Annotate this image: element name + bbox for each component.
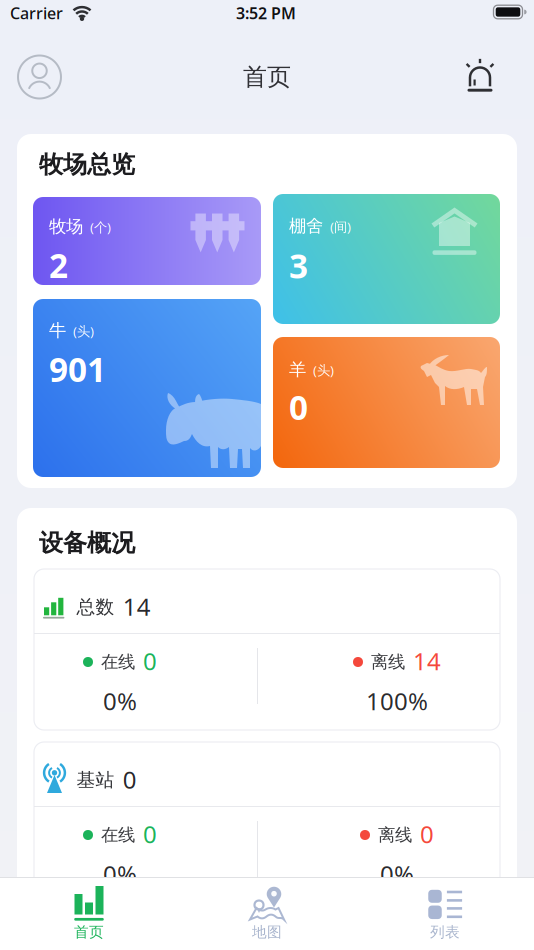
staticText: 14 bbox=[123, 591, 151, 622]
staticText: 3:52 PM bbox=[236, 2, 296, 24]
staticText: 在线 bbox=[101, 824, 135, 846]
button[interactable]: 列表 bbox=[356, 877, 534, 950]
staticText: 棚舍 bbox=[289, 215, 323, 237]
staticText: 牧场总览 bbox=[39, 150, 135, 179]
staticText: (个) bbox=[90, 218, 111, 236]
staticText: 设备概况 bbox=[39, 528, 135, 558]
staticText: 2 bbox=[49, 243, 68, 287]
staticText: 离线 bbox=[378, 824, 412, 846]
staticText: (间) bbox=[330, 218, 351, 235]
button[interactable]: Alerts bbox=[458, 55, 502, 99]
button[interactable]: 羊 bbox=[273, 337, 500, 468]
staticText: 0% bbox=[103, 858, 137, 890]
staticText: 14 bbox=[413, 645, 441, 677]
staticText: 3 bbox=[289, 243, 308, 288]
staticText: 0 bbox=[143, 818, 157, 850]
staticText: 总数 bbox=[76, 595, 114, 618]
staticText: 0 bbox=[420, 818, 434, 850]
staticText: 牛 bbox=[49, 320, 66, 341]
staticText: 基站 bbox=[76, 768, 114, 791]
staticText: 0 bbox=[143, 645, 157, 677]
staticText: 首页 bbox=[243, 62, 291, 92]
staticText: (头) bbox=[73, 322, 94, 340]
staticText: 100% bbox=[366, 685, 428, 717]
staticText: (头) bbox=[313, 361, 334, 379]
staticText: 在线 bbox=[101, 651, 135, 673]
staticText: 羊 bbox=[289, 359, 306, 380]
button[interactable]: 牧场 bbox=[33, 197, 261, 285]
staticText: 列表 bbox=[430, 923, 460, 941]
staticText: 0 bbox=[123, 764, 137, 795]
staticText: 地图 bbox=[252, 923, 282, 941]
button[interactable]: 棚舍 bbox=[273, 194, 500, 324]
staticText: 0% bbox=[103, 685, 137, 717]
staticText: 首页 bbox=[74, 923, 104, 941]
button[interactable]: 牛 bbox=[33, 299, 261, 477]
button[interactable]: 地图 bbox=[178, 877, 356, 950]
staticText: Carrier bbox=[10, 2, 63, 24]
staticText: 离线 bbox=[371, 651, 405, 673]
staticText: 901 bbox=[49, 347, 106, 391]
button[interactable]: 首页 bbox=[0, 877, 178, 950]
staticText: 0% bbox=[380, 858, 414, 890]
staticText: 牧场 bbox=[49, 216, 83, 237]
staticText: 0 bbox=[289, 385, 308, 429]
button[interactable]: Profile bbox=[17, 55, 61, 99]
